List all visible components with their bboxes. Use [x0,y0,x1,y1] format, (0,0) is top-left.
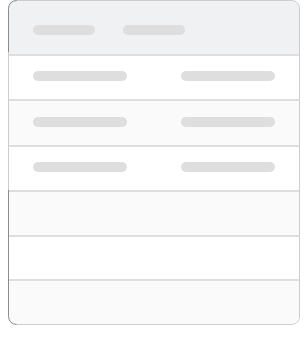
button[interactable]: Row 1 [8,55,300,99]
button[interactable]: Row 3 [8,146,300,190]
button[interactable]: Table header [8,0,300,54]
button[interactable]: Row 2 [8,100,300,145]
button[interactable]: Row 5 [8,236,300,279]
button[interactable]: Row 6 [8,280,300,325]
button[interactable]: Row 4 [8,191,300,235]
